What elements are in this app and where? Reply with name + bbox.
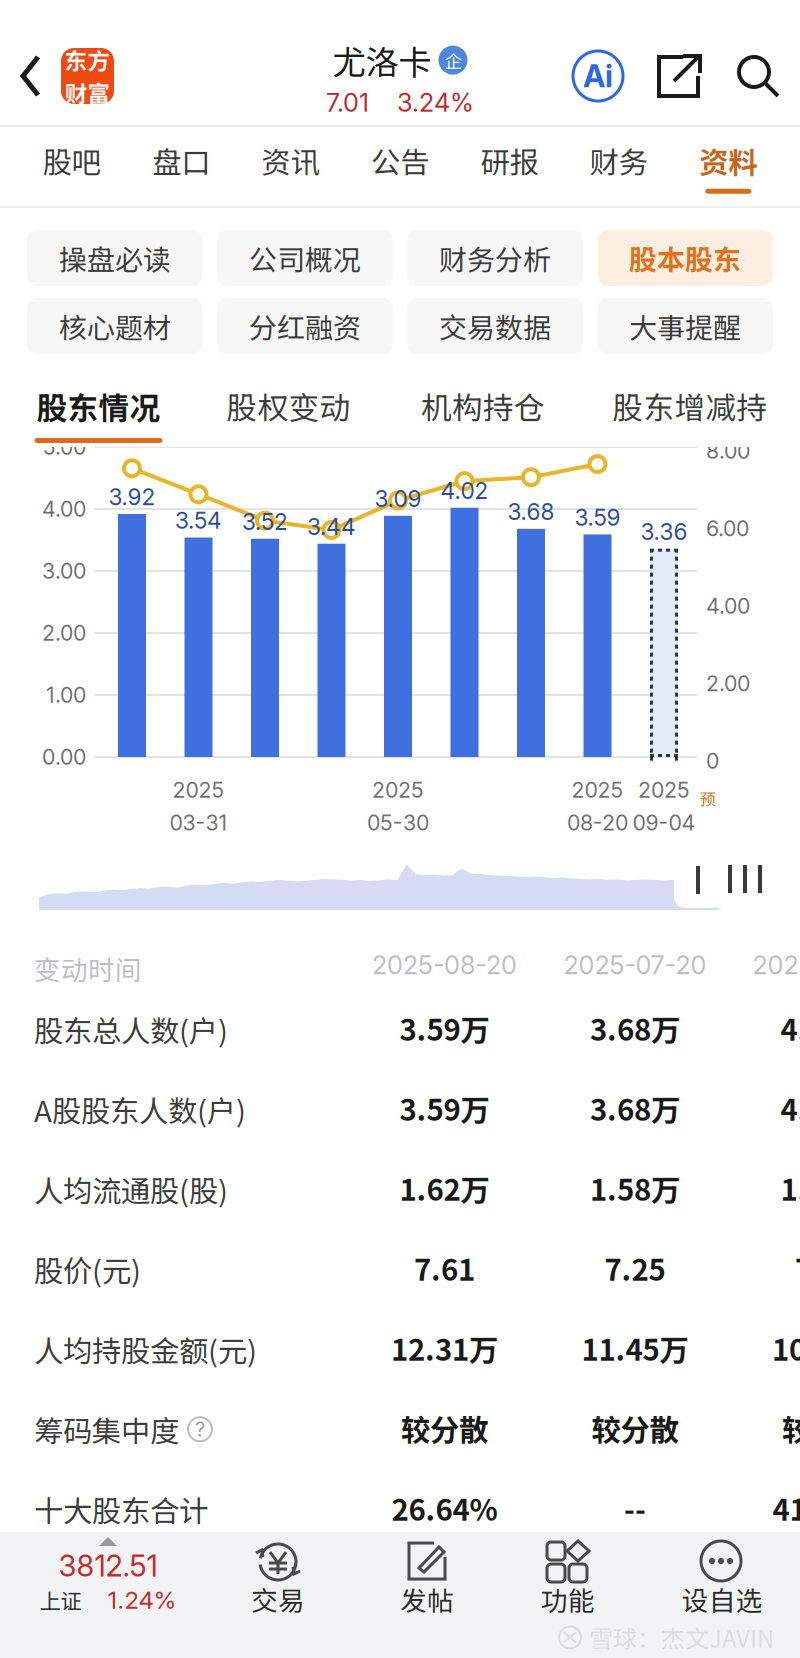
button[interactable]: 股东增减持 <box>0 364 788 447</box>
button[interactable]: Search <box>733 52 781 100</box>
staticText: 2025-08-20 <box>372 950 517 980</box>
button[interactable]: 操盘必读 <box>27 230 202 286</box>
staticText: 2025 <box>172 777 224 803</box>
button[interactable]: AI assistant <box>573 51 623 101</box>
staticText: 股东总人数(户) <box>34 1008 228 1050</box>
button[interactable]: 资讯 <box>236 130 345 203</box>
staticText: 3.54 <box>175 507 222 534</box>
button[interactable]: Back <box>0 46 114 106</box>
staticText: 3.59万 <box>399 1087 489 1129</box>
staticText: 股东情况 <box>36 384 160 428</box>
staticText: 股东增减持 <box>612 384 767 428</box>
button[interactable]: 公告 <box>345 130 455 203</box>
staticText: 3.68 <box>507 498 554 525</box>
button[interactable]: 发帖 <box>0 1532 492 1622</box>
staticText: 较分散 <box>401 1407 488 1449</box>
staticText: 雪球：杰文JAVIN <box>589 1620 774 1655</box>
staticText: 3.59 <box>574 504 620 531</box>
button[interactable]: Multi chart <box>711 848 779 910</box>
staticText: 研报 <box>480 139 538 182</box>
button[interactable]: 分红融资 <box>217 298 392 354</box>
staticText: 股权变动 <box>226 384 350 428</box>
staticText: ? <box>195 1417 205 1441</box>
button[interactable]: Share <box>655 52 703 100</box>
staticText: 财务分析 <box>439 238 551 278</box>
button[interactable]: 功能 <box>0 1532 633 1622</box>
staticText: 3.59万 <box>399 1007 489 1049</box>
button[interactable]: 公司概况 <box>217 230 392 286</box>
button[interactable]: 研报 <box>455 130 564 203</box>
staticText: 操盘必读 <box>59 238 171 278</box>
staticText: 人均流通股(股) <box>34 1168 228 1210</box>
staticText: 东方 <box>64 43 110 76</box>
button[interactable]: 股东情况 <box>0 364 196 447</box>
staticText: 7.68 <box>795 1247 800 1289</box>
staticText: 机构持仓 <box>421 384 545 428</box>
staticText: 8.00 <box>706 438 750 464</box>
staticText: 财富 <box>64 76 110 109</box>
staticText: 交易数据 <box>439 306 551 346</box>
staticText: 0 <box>706 748 719 774</box>
staticText: 大事提醒 <box>629 306 741 346</box>
staticText: 交易 <box>251 1580 305 1618</box>
staticText: 发帖 <box>400 1580 454 1618</box>
staticText: 1.24% <box>107 1585 176 1614</box>
staticText: 2025 <box>638 777 690 803</box>
staticText: 较分散 <box>591 1407 678 1449</box>
staticText: -- <box>624 1487 646 1529</box>
staticText: 公司概况 <box>249 238 361 278</box>
button[interactable]: 机构持仓 <box>0 364 581 447</box>
staticText: 2025 <box>571 777 623 803</box>
staticText: 09-04 <box>632 810 695 836</box>
staticText: 7.25 <box>604 1247 665 1289</box>
button[interactable]: 交易数据 <box>407 298 582 354</box>
button[interactable]: 盘口 <box>126 130 236 203</box>
staticText: 26.64% <box>391 1487 497 1529</box>
staticText: 1.00 <box>46 682 86 708</box>
staticText: 7.01 <box>326 87 369 118</box>
button[interactable]: Shanghai index 3812.51 <box>0 1532 216 1615</box>
staticText: 股本股东 <box>629 238 741 278</box>
staticText: 预 <box>700 787 716 810</box>
staticText: 4.02 <box>440 477 488 504</box>
staticText: 3.00 <box>42 558 86 584</box>
staticText: 核心题材 <box>59 306 171 346</box>
staticText: 较分散 <box>782 1407 800 1449</box>
staticText: 4.00 <box>706 593 750 619</box>
staticText: 3812.51 <box>58 1548 157 1583</box>
staticText: 4.15万 <box>780 1087 800 1129</box>
staticText: 企 <box>444 48 461 73</box>
button[interactable]: 资料 <box>674 130 783 203</box>
button[interactable]: 股吧 <box>17 130 126 203</box>
button[interactable]: 财务分析 <box>407 230 582 286</box>
staticText: 变动时间 <box>34 949 142 988</box>
button[interactable]: 核心题材 <box>27 298 202 354</box>
staticText: 6.00 <box>706 516 749 541</box>
staticText: 7.61 <box>414 1247 475 1289</box>
staticText: 4.00 <box>42 496 86 522</box>
staticText: 3.52 <box>242 508 288 535</box>
button[interactable]: 财务 <box>564 130 673 203</box>
staticText: 上证 <box>39 1584 81 1615</box>
staticText: 尤洛卡 <box>332 36 431 84</box>
button[interactable]: Single chart <box>674 850 722 908</box>
staticText: 设自选 <box>681 1580 762 1618</box>
staticText: 3.36 <box>640 518 687 545</box>
staticText: 5.00 <box>43 434 86 460</box>
button[interactable]: 股本股东 <box>597 230 772 286</box>
staticText: 41.22% <box>772 1487 800 1529</box>
staticText: 2025-06-30 <box>752 950 800 980</box>
staticText: 2025-07-20 <box>563 950 706 980</box>
staticText: 十大股东合计 <box>34 1488 208 1530</box>
staticText: 资料 <box>699 139 757 182</box>
button[interactable]: 大事提醒 <box>597 298 772 354</box>
button[interactable]: 股权变动 <box>0 364 386 447</box>
button[interactable]: 设自选 <box>0 1532 787 1622</box>
staticText: A股股东人数(户) <box>34 1088 246 1130</box>
staticText: 股价(元) <box>34 1248 141 1290</box>
staticText: 3.24% <box>397 87 474 118</box>
staticText: 财务 <box>590 139 648 182</box>
staticText: 股吧 <box>43 139 101 182</box>
staticText: 资讯 <box>262 139 320 182</box>
button[interactable]: 交易 <box>0 1532 343 1622</box>
